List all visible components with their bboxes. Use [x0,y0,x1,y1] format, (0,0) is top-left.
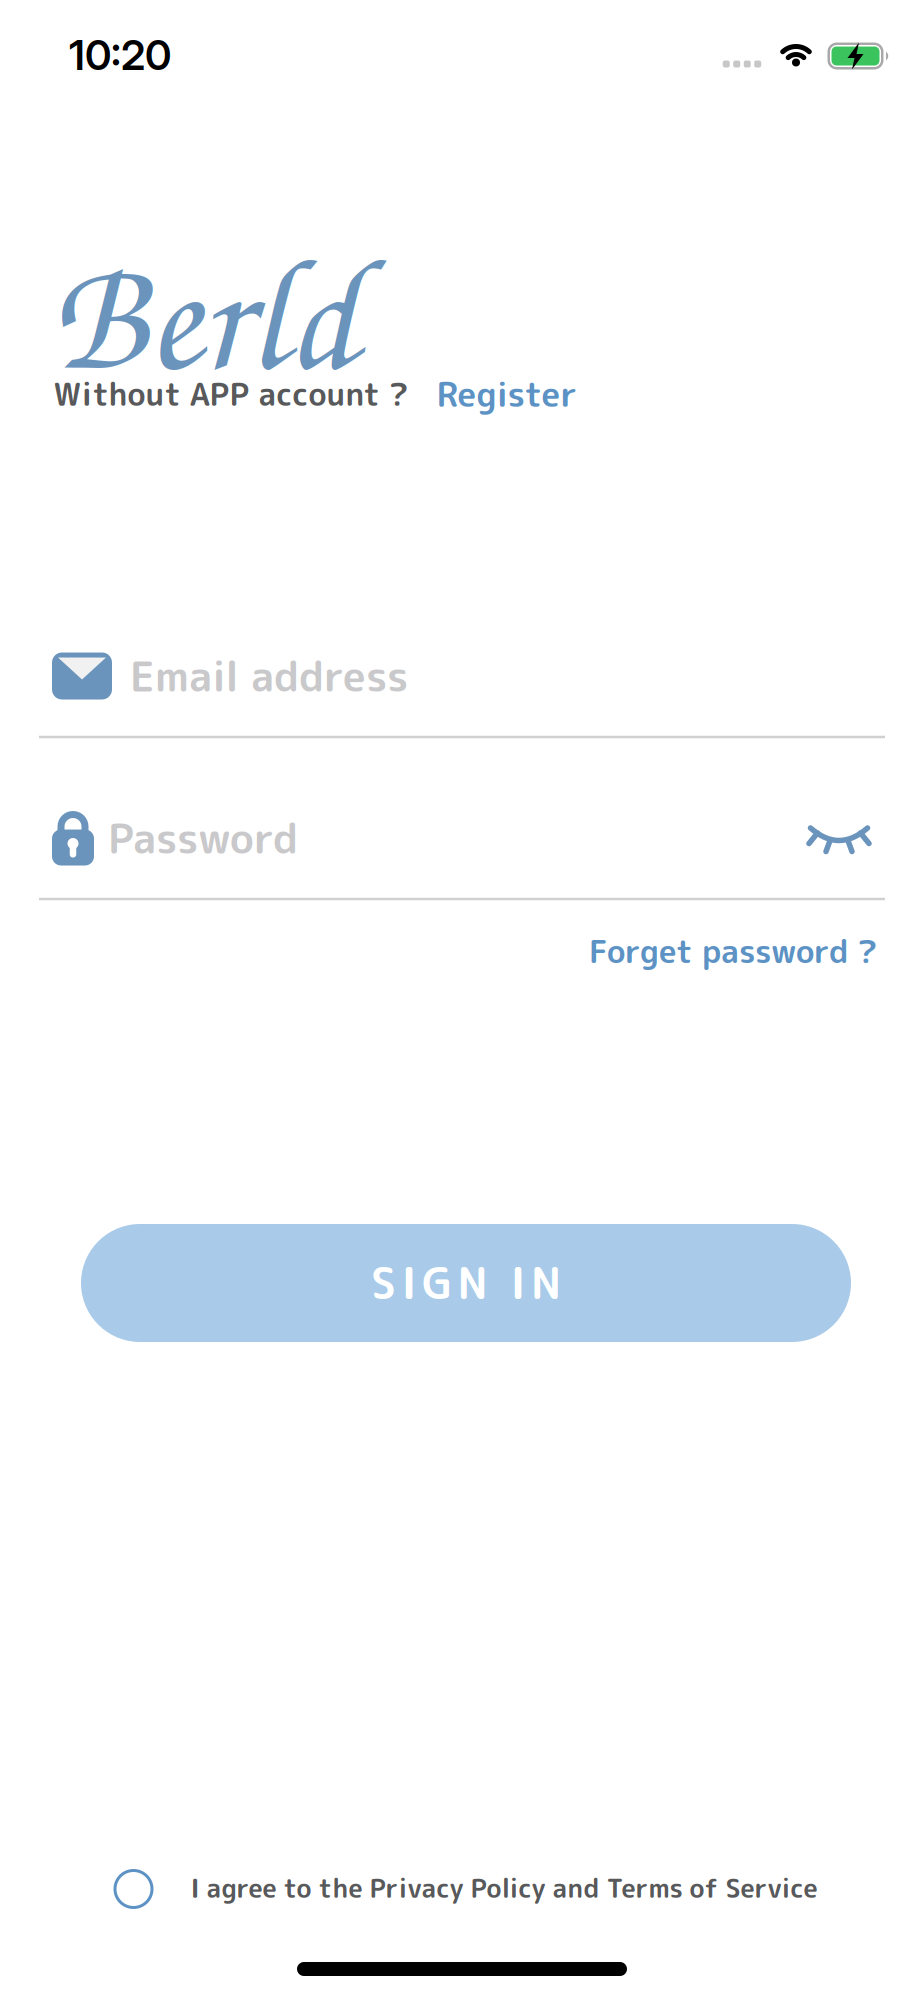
staticText: 10:20 [69,30,171,80]
button[interactable]: SIGN IN [81,1224,851,1342]
staticText: SIGN IN [371,1253,561,1313]
staticText: I agree to the Privacy Policy and Terms … [190,1870,817,1906]
button[interactable]: Show password [802,814,876,864]
button[interactable]: Register [436,370,576,418]
button[interactable]: I agree to the Privacy Policy and Terms … [190,1870,817,1906]
button[interactable]: Forget password ? [589,929,877,973]
staticText: Email address [130,647,408,705]
staticText: Password [108,809,298,867]
staticText: Berld [50,204,356,414]
button[interactable]: Agree to terms [113,1869,153,1909]
button[interactable]: Email address [39,630,885,722]
button[interactable]: Password [39,792,799,884]
staticText: Without APP account ? [53,372,408,416]
staticText: Forget password ? [589,929,877,973]
staticText: Register [436,370,576,418]
